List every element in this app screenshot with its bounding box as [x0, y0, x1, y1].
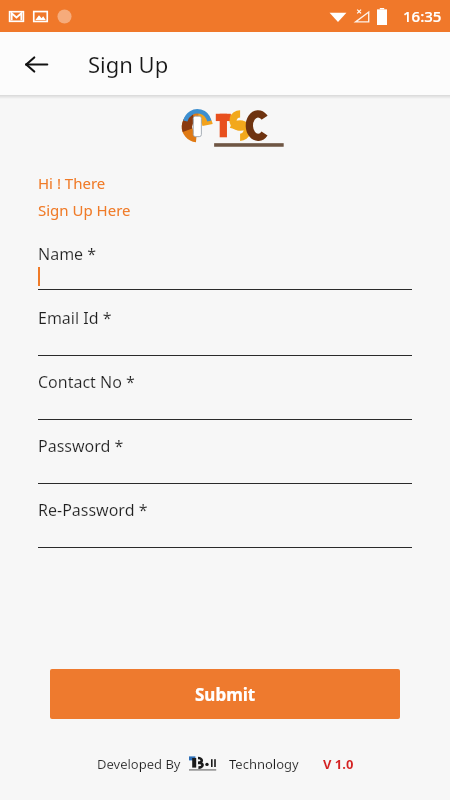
button[interactable]: Back [12, 40, 60, 88]
button[interactable]: Password * [38, 435, 412, 499]
staticText: Email Id * [38, 307, 112, 329]
button[interactable]: Name * [38, 243, 412, 307]
staticText: Contact No * [38, 371, 135, 393]
staticText: Submit [195, 683, 256, 706]
button[interactable]: Email Id * [38, 307, 412, 371]
staticText: Sign Up [88, 49, 169, 79]
staticText: Re-Password * [38, 499, 148, 521]
button[interactable]: Re-Password * [38, 499, 412, 563]
staticText: Sign Up Here [38, 200, 131, 220]
staticText: V 1.0 [323, 755, 354, 773]
button[interactable]: Contact No * [38, 371, 412, 435]
staticText: Name * [38, 243, 97, 265]
staticText: Password * [38, 435, 124, 457]
button[interactable]: Submit [50, 669, 400, 719]
staticText: 16:35 [403, 6, 442, 26]
staticText: Developed By [97, 755, 181, 773]
staticText: Technology [229, 755, 299, 773]
staticText: Hi ! There [38, 173, 106, 193]
